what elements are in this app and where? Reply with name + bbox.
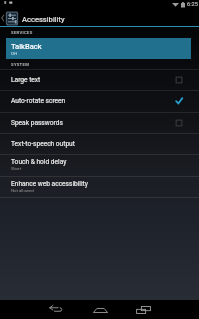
button[interactable]: TalkBack (6, 38, 191, 59)
button[interactable]: Recent apps (129, 300, 157, 319)
staticText: SYSTEM (11, 62, 30, 67)
staticText: Touch & hold delay (11, 158, 67, 166)
button[interactable]: Large text (0, 69, 199, 90)
button[interactable]: Text-to-speech output (0, 133, 199, 154)
staticText: Accessibility (22, 15, 65, 24)
button[interactable]: Touch & hold delay (0, 154, 199, 175)
button[interactable]: Back (41, 300, 69, 319)
staticText: Short (11, 166, 22, 171)
staticText: Not allowed (11, 188, 34, 193)
staticText: Off (11, 51, 17, 56)
staticText: Auto-rotate screen (11, 97, 66, 105)
button[interactable]: Home (86, 300, 114, 319)
button[interactable]: Enhance web accessibility (0, 176, 199, 197)
button[interactable]: Speak passwords (0, 112, 199, 133)
staticText: Text-to-speech output (11, 140, 75, 148)
staticText: 6:25 (187, 1, 198, 8)
button[interactable]: Auto-rotate screen (0, 90, 199, 111)
staticText: TalkBack (11, 42, 42, 51)
button[interactable]: Accessibility (0, 9, 199, 27)
staticText: SERVICES (11, 30, 33, 35)
staticText: Large text (11, 76, 41, 84)
staticText: Speak passwords (11, 119, 63, 127)
staticText: Enhance web accessibility (11, 180, 88, 188)
